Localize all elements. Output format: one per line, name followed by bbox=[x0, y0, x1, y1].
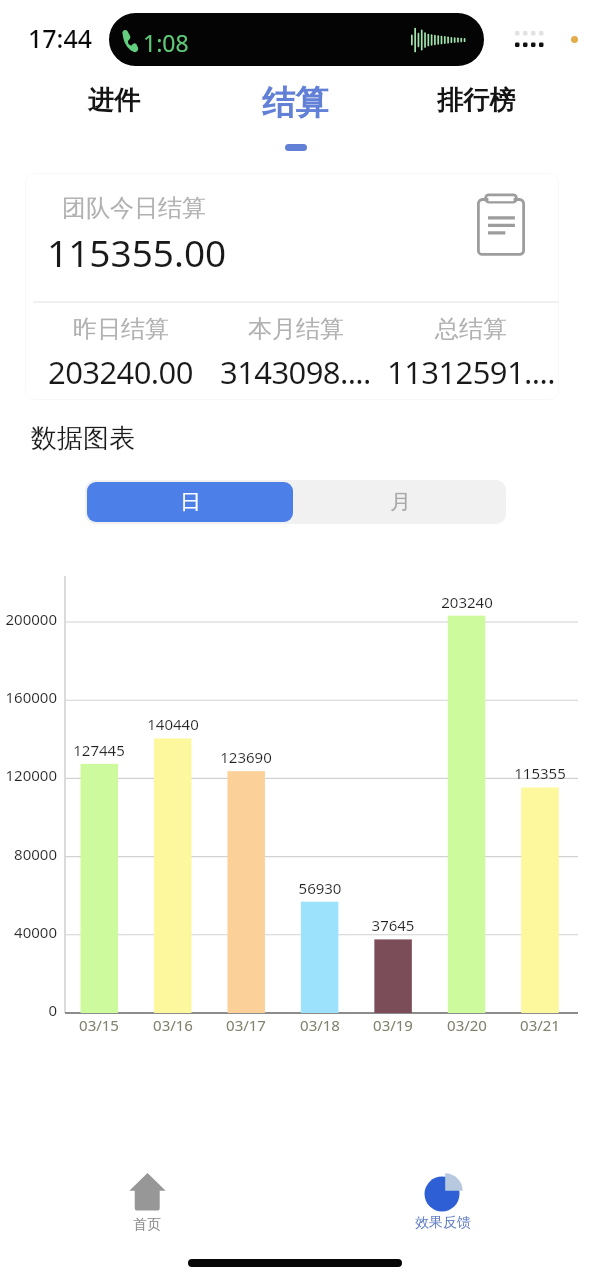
staticText: 200000 bbox=[0, 609, 57, 629]
staticText: 日 bbox=[180, 489, 201, 515]
staticText: 120000 bbox=[0, 765, 57, 785]
staticText: 3143098.... bbox=[220, 351, 371, 393]
staticText: 17:44 bbox=[28, 21, 93, 55]
staticText: 进件 bbox=[88, 84, 140, 117]
staticText: 203240 bbox=[422, 592, 512, 612]
staticText: 140440 bbox=[128, 714, 218, 734]
button[interactable]: 结算 bbox=[234, 81, 355, 125]
other: 结算报表 bbox=[477, 193, 525, 255]
staticText: 160000 bbox=[0, 687, 57, 707]
staticText: 11312591.... bbox=[387, 351, 555, 393]
staticText: 03/16 bbox=[128, 1015, 218, 1035]
staticText: 03/21 bbox=[495, 1015, 585, 1035]
staticText: 首页 bbox=[133, 1216, 161, 1232]
staticText: 数据图表 bbox=[31, 422, 135, 455]
button[interactable]: 月 bbox=[295, 480, 506, 524]
button[interactable]: 团队今日结算 bbox=[25, 173, 559, 400]
staticText: 本月结算 bbox=[248, 314, 344, 344]
staticText: 排行榜 bbox=[437, 84, 515, 117]
staticText: 昨日结算 bbox=[73, 314, 169, 344]
staticText: 37645 bbox=[348, 915, 438, 935]
staticText: 1:08 bbox=[143, 27, 189, 58]
button[interactable]: 排行榜 bbox=[415, 80, 536, 120]
button[interactable]: 日 bbox=[87, 482, 293, 522]
button[interactable]: 效果反馈 bbox=[403, 1170, 483, 1232]
staticText: 03/18 bbox=[275, 1015, 365, 1035]
staticText: 0 bbox=[0, 1000, 57, 1020]
staticText: 03/19 bbox=[348, 1015, 438, 1035]
other: 通话中 bbox=[121, 30, 138, 52]
staticText: 56930 bbox=[275, 878, 365, 898]
button[interactable]: 本月结算 bbox=[208, 314, 383, 393]
staticText: 123690 bbox=[201, 747, 291, 767]
button[interactable]: 昨日结算 bbox=[33, 314, 208, 393]
staticText: 40000 bbox=[0, 922, 57, 942]
staticText: 团队今日结算 bbox=[62, 193, 206, 223]
button[interactable]: 总结算 bbox=[383, 314, 558, 393]
staticText: 80000 bbox=[0, 844, 57, 864]
button[interactable]: 进件 bbox=[53, 80, 174, 120]
staticText: 效果反馈 bbox=[415, 1214, 471, 1232]
staticText: 03/20 bbox=[422, 1015, 512, 1035]
staticText: 月 bbox=[390, 489, 411, 515]
staticText: 127445 bbox=[54, 740, 144, 760]
staticText: 03/15 bbox=[54, 1015, 144, 1035]
staticText: 203240.00 bbox=[48, 351, 193, 393]
button[interactable]: 首页 bbox=[107, 1170, 187, 1232]
staticText: 115355.00 bbox=[47, 227, 227, 277]
staticText: 结算 bbox=[262, 82, 328, 124]
staticText: 115355 bbox=[495, 763, 585, 783]
staticText: 03/17 bbox=[201, 1015, 291, 1035]
staticText: 总结算 bbox=[435, 314, 507, 344]
